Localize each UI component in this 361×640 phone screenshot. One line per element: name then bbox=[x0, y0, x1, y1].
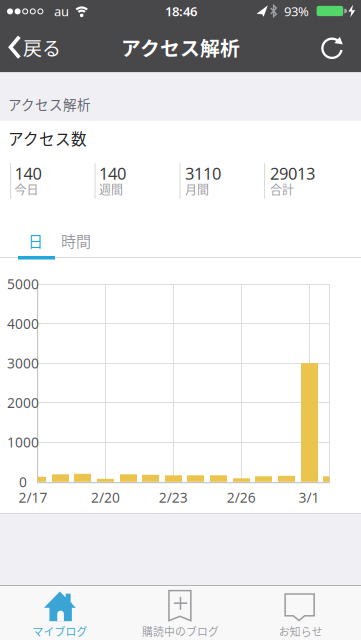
staticText: 戻る bbox=[23, 33, 61, 61]
button[interactable]: マイブログ bbox=[0, 585, 120, 640]
staticText: 3110 bbox=[185, 162, 221, 185]
button[interactable]: 時間 bbox=[51, 225, 101, 255]
button[interactable]: お知らせ bbox=[241, 585, 361, 640]
staticText: 4000 bbox=[7, 314, 39, 333]
button[interactable]: 更新 bbox=[310, 25, 354, 69]
staticText: 1000 bbox=[7, 433, 39, 452]
staticText: お知らせ bbox=[279, 623, 323, 639]
staticText: 0 bbox=[19, 472, 27, 491]
staticText: アクセス解析 bbox=[121, 33, 240, 62]
staticText: 時間 bbox=[61, 230, 91, 251]
staticText: 週間 bbox=[99, 181, 123, 198]
staticText: 2/23 bbox=[159, 488, 188, 507]
button[interactable]: 購読中のブログ bbox=[120, 585, 241, 640]
staticText: 2/26 bbox=[227, 488, 256, 507]
staticText: 日 bbox=[28, 230, 43, 251]
staticText: 5000 bbox=[7, 275, 39, 293]
staticText: マイブログ bbox=[33, 623, 88, 639]
staticText: 3/1 bbox=[299, 488, 320, 507]
staticText: 購読中のブログ bbox=[142, 623, 219, 639]
staticText: アクセス解析 bbox=[8, 94, 91, 114]
staticText: 29013 bbox=[270, 162, 315, 185]
staticText: 3000 bbox=[7, 354, 39, 372]
staticText: au bbox=[54, 2, 69, 20]
button[interactable]: 戻る bbox=[2, 25, 68, 69]
staticText: 月間 bbox=[185, 181, 209, 198]
staticText: 18:46 bbox=[165, 2, 197, 20]
staticText: 2/20 bbox=[91, 488, 120, 507]
button[interactable]: 日 bbox=[15, 225, 55, 255]
staticText: 2000 bbox=[7, 393, 39, 412]
staticText: 93% bbox=[284, 2, 309, 20]
staticText: 140 bbox=[14, 162, 41, 185]
staticText: 合計 bbox=[270, 181, 294, 198]
staticText: 140 bbox=[99, 162, 126, 185]
staticText: 今日 bbox=[14, 181, 38, 198]
staticText: アクセス数 bbox=[8, 127, 87, 149]
staticText: 2/17 bbox=[18, 488, 47, 507]
